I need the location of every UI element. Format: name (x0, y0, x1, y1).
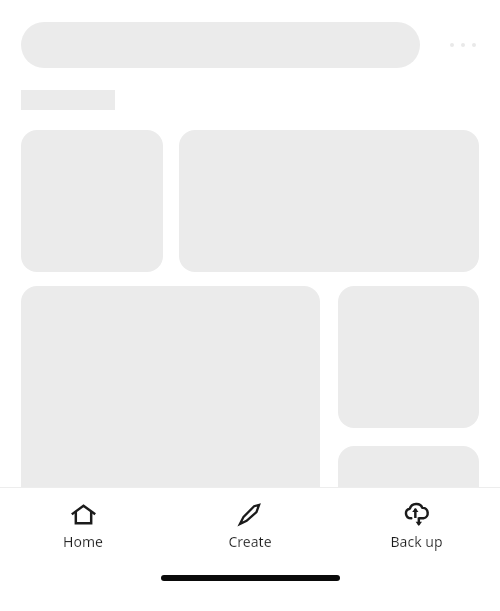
button[interactable]: Home (0, 488, 166, 560)
button[interactable]: More options (442, 30, 484, 60)
button[interactable]: Search (21, 22, 420, 68)
button[interactable]: Back up (333, 488, 500, 560)
staticText: Back up (390, 532, 443, 551)
staticText: Home (63, 532, 103, 551)
staticText: Create (228, 532, 272, 551)
button[interactable]: Create (166, 488, 333, 560)
